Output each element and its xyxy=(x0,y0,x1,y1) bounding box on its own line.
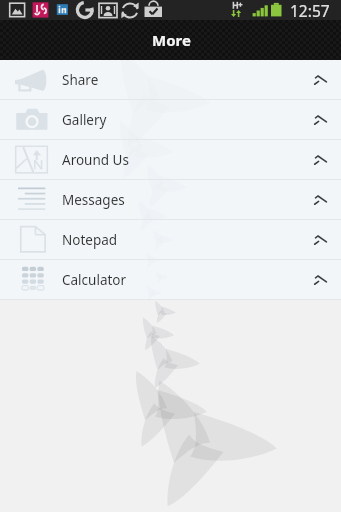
other: Collapse xyxy=(313,234,327,245)
other: Collapse xyxy=(313,194,327,205)
staticText: More xyxy=(152,30,191,50)
staticText: Around Us xyxy=(62,151,129,169)
button[interactable]: Calculator xyxy=(0,260,341,300)
button[interactable]: Share xyxy=(0,60,341,100)
staticText: Messages xyxy=(62,191,125,209)
staticText: Notepad xyxy=(62,231,118,249)
other: Collapse xyxy=(313,74,327,85)
staticText: 12:57 xyxy=(290,0,330,19)
button[interactable]: Messages xyxy=(0,180,341,220)
button[interactable]: Notepad xyxy=(0,220,341,260)
button[interactable]: Around Us xyxy=(0,140,341,180)
staticText: Calculator xyxy=(62,271,127,289)
button[interactable]: Gallery xyxy=(0,100,341,140)
other: Collapse xyxy=(313,154,327,165)
staticText: Share xyxy=(62,71,99,89)
other: Collapse xyxy=(313,114,327,125)
other: Collapse xyxy=(313,274,327,285)
staticText: Gallery xyxy=(62,111,107,129)
